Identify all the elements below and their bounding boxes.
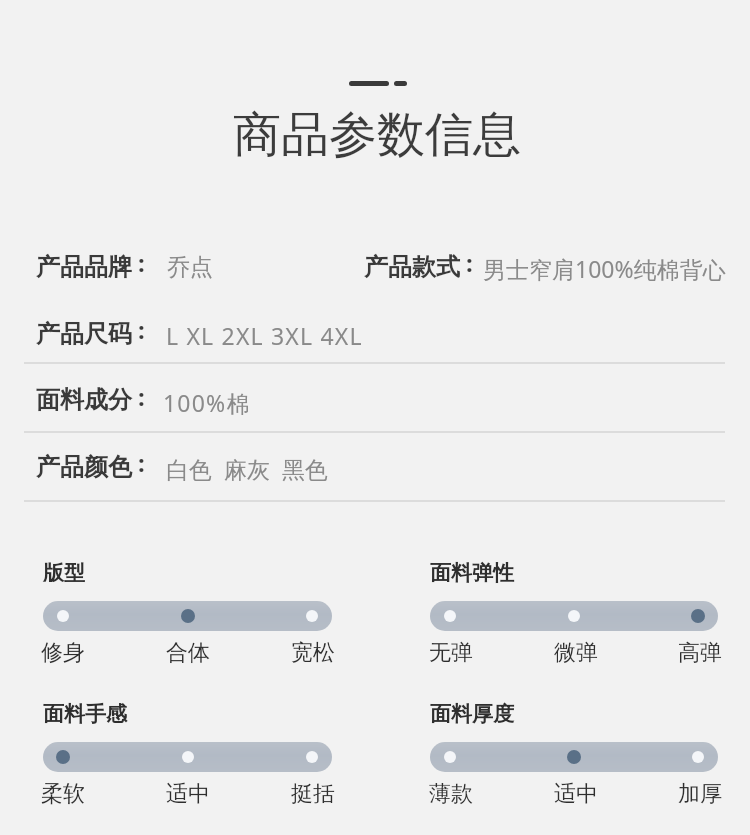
button[interactable]: 产品尺码: L XL 2XL 3XL 4XL — [24, 313, 726, 351]
button[interactable]: 宽松 — [291, 639, 335, 667]
staticText: 面料弹性 — [430, 560, 514, 586]
button[interactable]: 合体 — [166, 639, 210, 667]
button[interactable]: 微弹 — [554, 639, 598, 667]
button[interactable]: 面料弹性: 高弹 — [430, 601, 718, 631]
staticText: 产品颜色 — [36, 452, 132, 482]
staticText: 白色 麻灰 黑色 — [166, 453, 328, 484]
staticText: 产品款式 — [364, 252, 460, 282]
staticText: : — [138, 246, 145, 279]
staticText: 产品品牌 — [36, 252, 132, 282]
staticText: : — [466, 246, 473, 279]
button[interactable]: 加厚 — [678, 780, 722, 808]
staticText: 面料厚度 — [430, 701, 514, 727]
staticText: 面料手感 — [43, 701, 127, 727]
button[interactable]: 无弹 — [429, 639, 473, 667]
button[interactable]: 产品款式: 男士窄肩100%纯棉背心 — [352, 246, 726, 284]
staticText: 男士窄肩100%纯棉背心 — [483, 253, 726, 284]
staticText: : — [138, 446, 145, 479]
button[interactable]: 修身 — [41, 639, 85, 667]
staticText: 乔点 — [167, 253, 213, 282]
staticText: 商品参数信息 — [2, 105, 750, 165]
staticText: : — [138, 313, 145, 346]
button[interactable]: 产品颜色: 白色 麻灰 黑色 — [24, 446, 726, 484]
button[interactable]: 适中 — [554, 780, 598, 808]
button[interactable]: 适中 — [166, 780, 210, 808]
button[interactable]: 柔软 — [41, 780, 85, 808]
button[interactable]: 挺括 — [291, 780, 335, 808]
button[interactable]: 产品品牌: 乔点 — [24, 246, 324, 284]
staticText: 100%棉 — [163, 387, 251, 418]
button[interactable]: 面料手感: 柔软 — [43, 742, 332, 772]
button[interactable]: 版型: 合体 — [43, 601, 332, 631]
button[interactable]: 面料厚度: 适中 — [430, 742, 718, 772]
staticText: 产品尺码 — [36, 319, 132, 349]
staticText: : — [138, 380, 145, 413]
staticText: L XL 2XL 3XL 4XL — [166, 320, 363, 351]
staticText: 面料成分 — [36, 385, 132, 415]
button[interactable]: 薄款 — [429, 780, 473, 808]
staticText: 版型 — [43, 560, 85, 586]
button[interactable]: 高弹 — [678, 639, 722, 667]
button[interactable]: 面料成分: 100%棉 — [24, 379, 726, 417]
